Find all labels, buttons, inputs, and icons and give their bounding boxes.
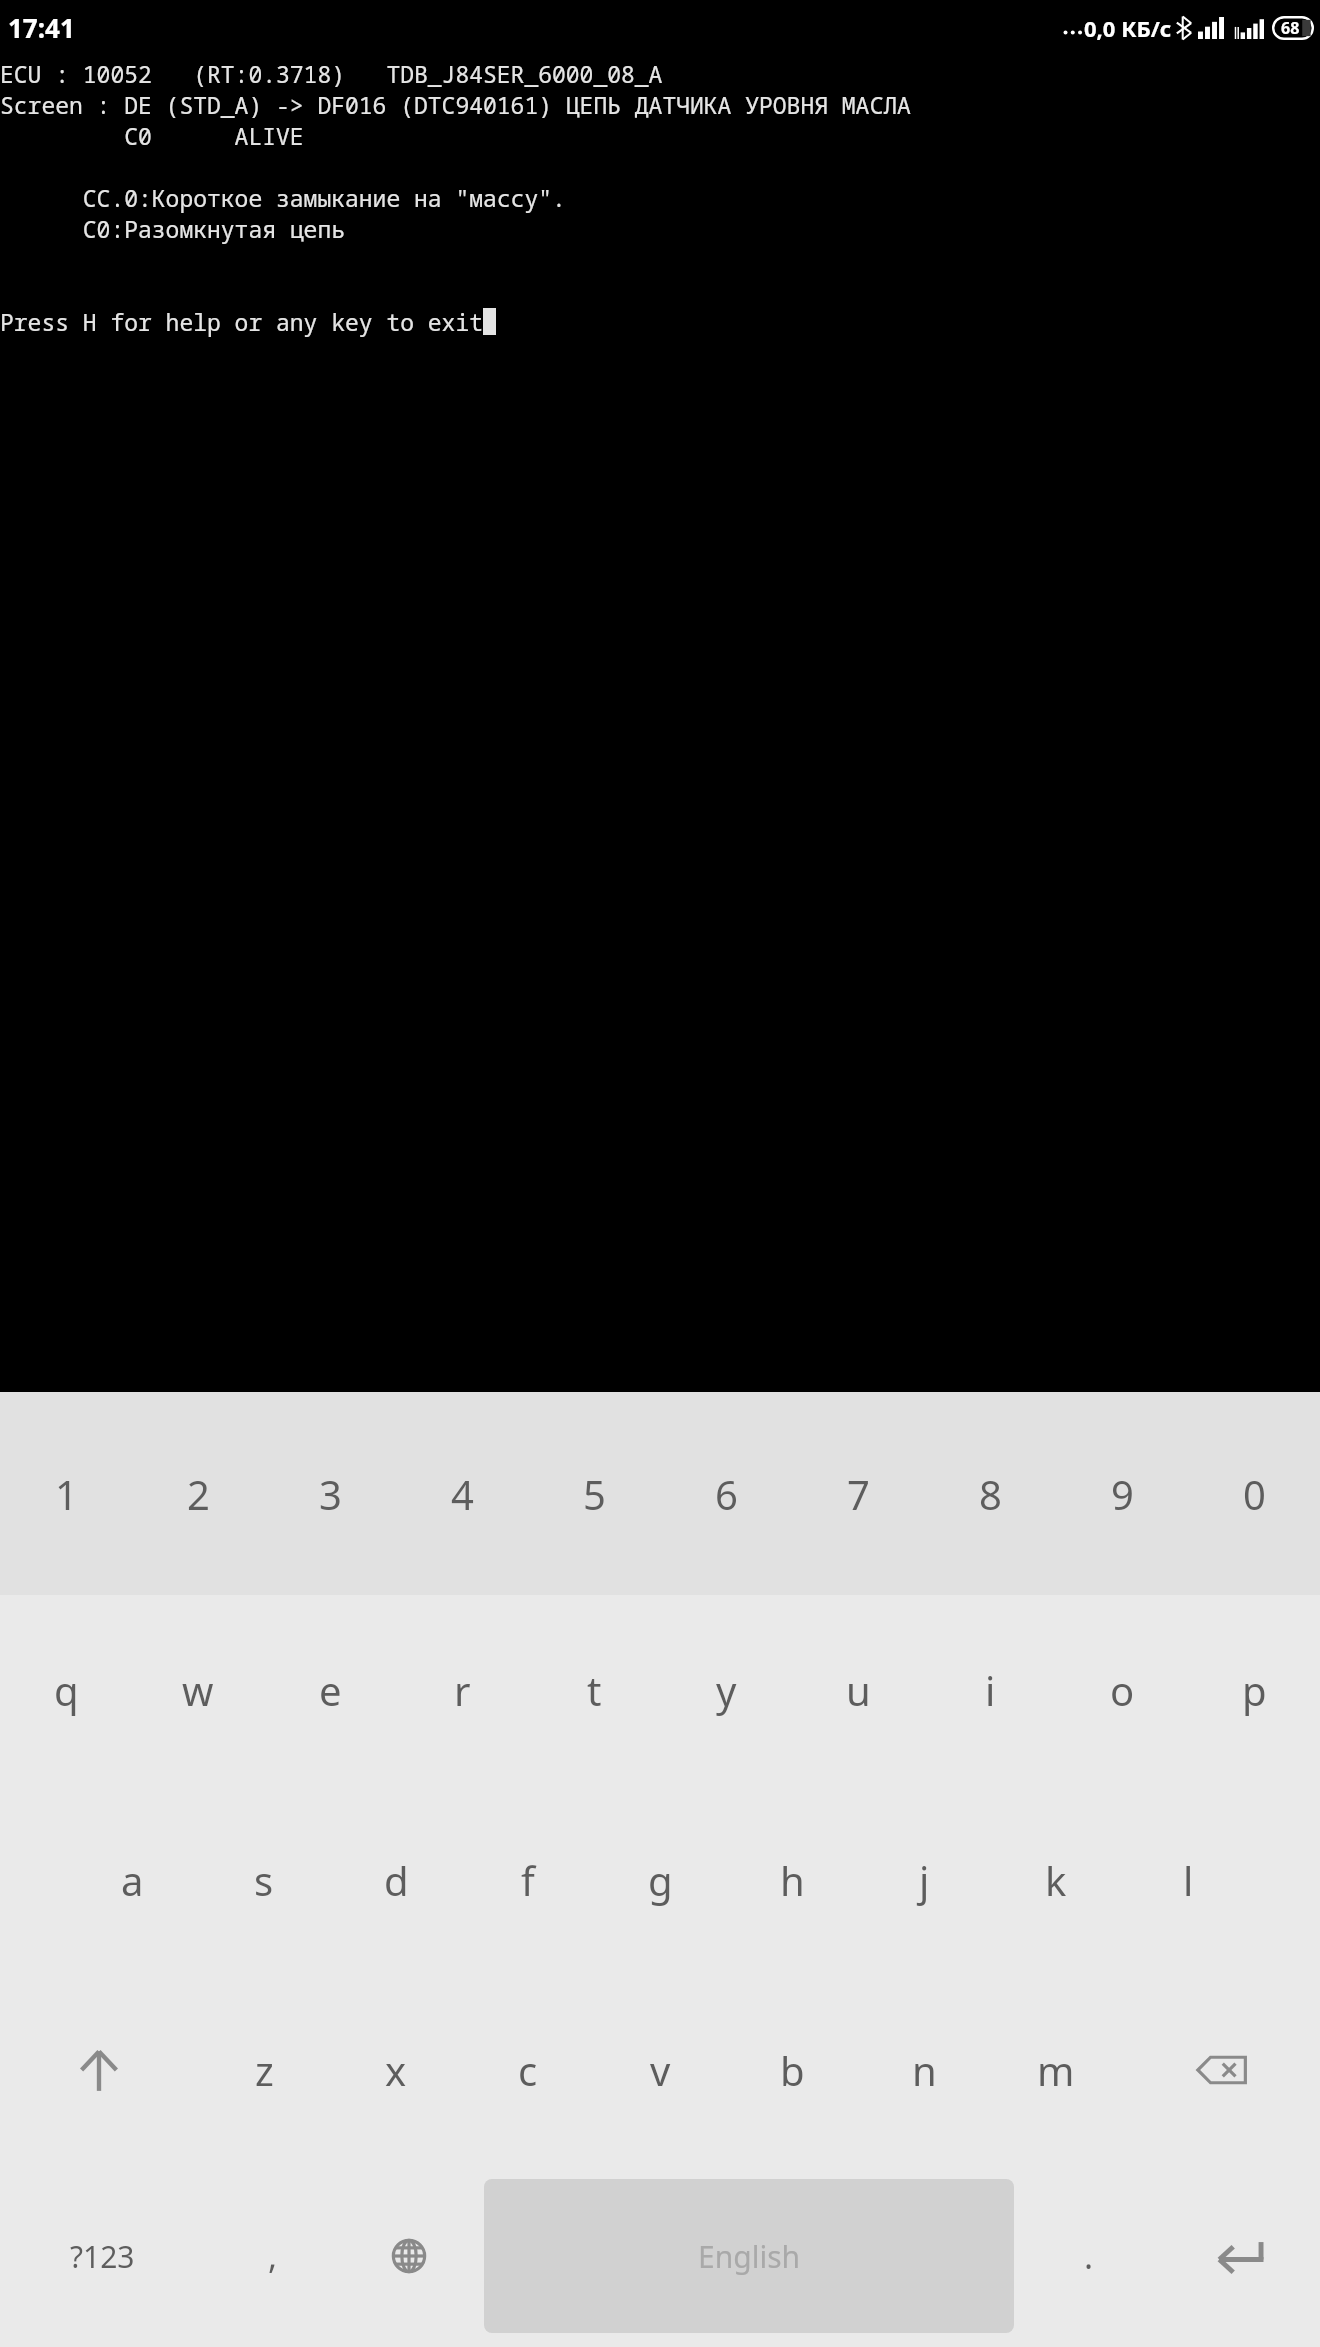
- button[interactable]: o: [1056, 1595, 1188, 1785]
- staticText: Screen : DE (STD_A) -> DF016 (DTC940161)…: [0, 89, 911, 120]
- button[interactable]: y: [660, 1595, 792, 1785]
- staticText: 3: [319, 1467, 342, 1521]
- button[interactable]: r: [396, 1595, 528, 1785]
- staticText: C0 ALIVE: [0, 120, 304, 151]
- staticText: p: [1242, 1663, 1267, 1717]
- staticText: t: [587, 1663, 602, 1717]
- staticText: c: [518, 2043, 538, 2097]
- button[interactable]: 0: [1188, 1392, 1320, 1595]
- button[interactable]: n: [858, 1975, 990, 2165]
- staticText: o: [1110, 1663, 1135, 1717]
- staticText: w: [182, 1663, 214, 1717]
- staticText: d: [384, 1853, 409, 1907]
- staticText: 17:41: [8, 10, 75, 45]
- staticText: ?123: [70, 2236, 135, 2277]
- button[interactable]: v: [594, 1975, 726, 2165]
- button[interactable]: q: [0, 1595, 132, 1785]
- staticText: f: [521, 1853, 535, 1907]
- staticText: 8: [979, 1467, 1002, 1521]
- button[interactable]: 1: [0, 1392, 132, 1595]
- button[interactable]: b: [726, 1975, 858, 2165]
- staticText: English: [698, 2236, 801, 2277]
- staticText: e: [319, 1663, 342, 1717]
- staticText: r: [454, 1663, 471, 1717]
- button[interactable]: x: [330, 1975, 462, 2165]
- button[interactable]: f: [462, 1785, 594, 1975]
- staticText: n: [912, 2043, 937, 2097]
- staticText: 7: [847, 1467, 870, 1521]
- staticText: j: [919, 1853, 930, 1907]
- button[interactable]: Change keyboard language: [341, 2165, 477, 2347]
- button[interactable]: .: [1021, 2165, 1157, 2347]
- staticText: b: [780, 2043, 805, 2097]
- button[interactable]: 5: [528, 1392, 660, 1595]
- staticText: Press H for help or any key to exit: [0, 306, 483, 337]
- staticText: g: [648, 1853, 673, 1907]
- staticText: ,: [268, 2233, 278, 2279]
- button[interactable]: p: [1188, 1595, 1320, 1785]
- button[interactable]: t: [528, 1595, 660, 1785]
- staticText: s: [254, 1853, 274, 1907]
- button[interactable]: Backspace: [1122, 1975, 1320, 2165]
- button[interactable]: 7: [792, 1392, 924, 1595]
- button[interactable]: u: [792, 1595, 924, 1785]
- button[interactable]: 8: [924, 1392, 1056, 1595]
- button[interactable]: g: [594, 1785, 726, 1975]
- staticText: CC.0:Короткое замыкание на "массу".: [0, 182, 566, 213]
- button[interactable]: e: [264, 1595, 396, 1785]
- staticText: ECU : 10052 (RT:0.3718) TDB_J84SER_6000_…: [0, 58, 663, 89]
- button[interactable]: 9: [1056, 1392, 1188, 1595]
- button[interactable]: m: [990, 1975, 1122, 2165]
- staticText: 5: [583, 1467, 606, 1521]
- staticText: k: [1045, 1853, 1067, 1907]
- staticText: 4: [451, 1467, 474, 1521]
- button[interactable]: Shift: [0, 1975, 198, 2165]
- staticText: 68: [1281, 17, 1300, 39]
- staticText: C0:Разомкнутая цепь: [0, 213, 346, 244]
- button[interactable]: w: [132, 1595, 264, 1785]
- staticText: x: [385, 2043, 407, 2097]
- staticText: a: [121, 1853, 144, 1907]
- staticText: 1: [55, 1467, 78, 1521]
- button[interactable]: c: [462, 1975, 594, 2165]
- staticText: 0: [1243, 1467, 1266, 1521]
- button[interactable]: English: [484, 2179, 1014, 2333]
- button[interactable]: h: [726, 1785, 858, 1975]
- staticText: 6: [715, 1467, 738, 1521]
- staticText: i: [985, 1663, 996, 1717]
- button[interactable]: 6: [660, 1392, 792, 1595]
- staticText: v: [650, 2043, 671, 2097]
- staticText: 0,0 КБ/с: [1084, 13, 1172, 43]
- button[interactable]: d: [330, 1785, 462, 1975]
- staticText: h: [780, 1853, 805, 1907]
- button[interactable]: k: [990, 1785, 1122, 1975]
- button[interactable]: Enter: [1157, 2165, 1320, 2347]
- button[interactable]: l: [1122, 1785, 1254, 1975]
- button[interactable]: z: [198, 1975, 330, 2165]
- button[interactable]: i: [924, 1595, 1056, 1785]
- staticText: z: [255, 2043, 274, 2097]
- button[interactable]: 2: [132, 1392, 264, 1595]
- button[interactable]: j: [858, 1785, 990, 1975]
- button[interactable]: 3: [264, 1392, 396, 1595]
- staticText: l: [1183, 1853, 1194, 1907]
- button[interactable]: ,: [205, 2165, 341, 2347]
- staticText: u: [846, 1663, 871, 1717]
- staticText: m: [1037, 2043, 1075, 2097]
- staticText: y: [716, 1663, 737, 1717]
- button[interactable]: ?123: [0, 2165, 205, 2347]
- staticText: q: [54, 1663, 79, 1717]
- button[interactable]: a: [66, 1785, 198, 1975]
- staticText: .: [1084, 2233, 1094, 2279]
- button[interactable]: s: [198, 1785, 330, 1975]
- staticText: 9: [1111, 1467, 1134, 1521]
- staticText: 2: [187, 1467, 210, 1521]
- button[interactable]: 4: [396, 1392, 528, 1595]
